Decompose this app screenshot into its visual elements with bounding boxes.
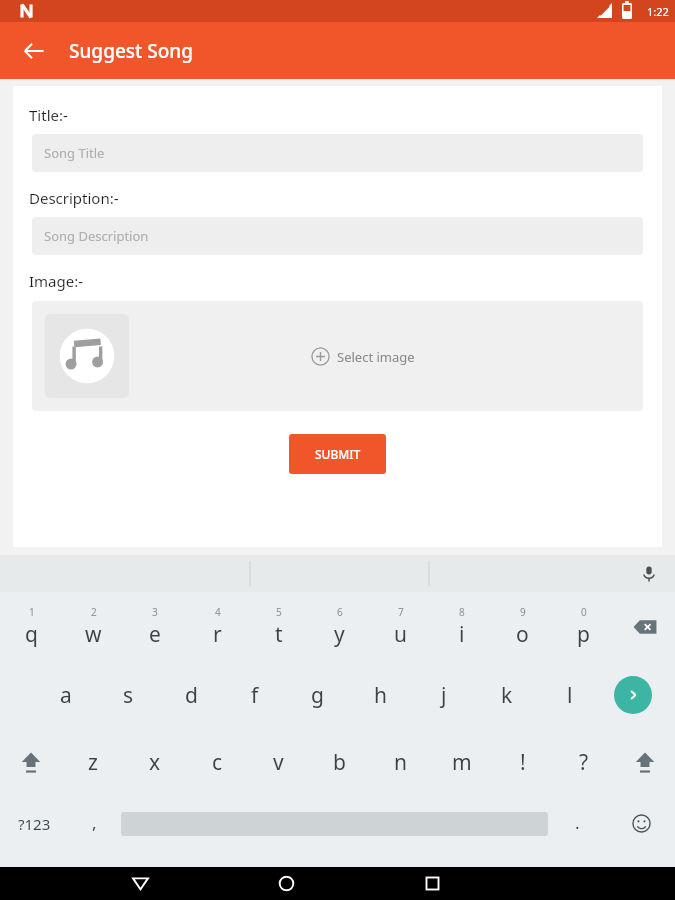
button[interactable]: h bbox=[349, 662, 412, 728]
button[interactable]: Home bbox=[262, 867, 310, 900]
staticText: s bbox=[123, 681, 134, 710]
staticText: g bbox=[311, 681, 324, 710]
button[interactable]: 2 bbox=[62, 592, 124, 662]
button[interactable]: 6 bbox=[309, 592, 370, 662]
staticText: 8 bbox=[459, 605, 465, 619]
button[interactable]: Backspace bbox=[614, 592, 675, 662]
staticText: Title:- bbox=[29, 105, 68, 125]
button[interactable]: g bbox=[286, 662, 349, 728]
button[interactable]: n bbox=[370, 728, 431, 796]
button[interactable]: SUBMIT bbox=[289, 434, 386, 474]
staticText: 4 bbox=[215, 605, 221, 619]
staticText: l bbox=[567, 681, 573, 710]
button[interactable]: 7 bbox=[370, 592, 431, 662]
button[interactable]: Shift bbox=[0, 728, 62, 796]
button[interactable]: 0 bbox=[553, 592, 614, 662]
staticText: 6 bbox=[337, 605, 343, 619]
button[interactable]: l bbox=[538, 662, 601, 728]
button[interactable]: 9 bbox=[492, 592, 553, 662]
button[interactable]: Voice input bbox=[633, 558, 665, 590]
staticText: f bbox=[251, 681, 259, 710]
staticText: ?123 bbox=[18, 814, 51, 834]
button[interactable]: Shift bbox=[614, 728, 675, 796]
staticText: j bbox=[441, 681, 447, 710]
staticText: Song Title bbox=[44, 144, 105, 162]
staticText: i bbox=[459, 620, 465, 649]
button[interactable]: Back bbox=[116, 867, 164, 900]
staticText: y bbox=[334, 620, 345, 649]
button[interactable]: Enter bbox=[601, 662, 664, 728]
button[interactable]: Space bbox=[121, 796, 548, 851]
staticText: u bbox=[394, 620, 407, 649]
staticText: c bbox=[212, 748, 223, 777]
staticText: v bbox=[273, 748, 284, 777]
button[interactable]: x bbox=[124, 728, 186, 796]
button[interactable]: Back bbox=[12, 29, 56, 73]
button[interactable]: . bbox=[548, 796, 607, 851]
staticText: 1:22 bbox=[647, 4, 669, 19]
button[interactable]: Emoji bbox=[607, 796, 675, 851]
staticText: 5 bbox=[276, 605, 282, 619]
button[interactable]: c bbox=[186, 728, 248, 796]
staticText: n bbox=[394, 748, 407, 777]
button[interactable]: f bbox=[223, 662, 286, 728]
button[interactable]: z bbox=[62, 728, 124, 796]
staticText: m bbox=[452, 748, 472, 777]
button[interactable]: v bbox=[248, 728, 309, 796]
staticText: 1 bbox=[29, 605, 35, 619]
staticText: d bbox=[185, 681, 198, 710]
button[interactable]: 5 bbox=[248, 592, 309, 662]
button[interactable]: k bbox=[475, 662, 538, 728]
button[interactable]: Recent apps bbox=[408, 867, 456, 900]
button[interactable]: b bbox=[309, 728, 370, 796]
staticText: x bbox=[149, 748, 161, 777]
staticText: t bbox=[275, 620, 283, 649]
staticText: w bbox=[85, 620, 102, 649]
staticText: ! bbox=[520, 748, 526, 777]
staticText: b bbox=[333, 748, 346, 777]
staticText: a bbox=[60, 681, 72, 710]
staticText: . bbox=[575, 811, 580, 834]
staticText: Description:- bbox=[29, 188, 119, 208]
staticText: 9 bbox=[520, 605, 526, 619]
staticText: e bbox=[149, 620, 161, 649]
button[interactable]: 1 bbox=[0, 592, 62, 662]
staticText: Suggest Song bbox=[69, 38, 194, 64]
button[interactable]: 8 bbox=[431, 592, 492, 662]
staticText: o bbox=[516, 620, 529, 649]
button[interactable]: , bbox=[68, 796, 121, 851]
staticText: , bbox=[92, 811, 97, 834]
staticText: SUBMIT bbox=[315, 446, 361, 462]
button[interactable]: s bbox=[97, 662, 160, 728]
button[interactable]: ? bbox=[553, 728, 614, 796]
staticText: h bbox=[374, 681, 387, 710]
staticText: 3 bbox=[152, 605, 158, 619]
staticText: Song Description bbox=[44, 227, 149, 245]
button[interactable]: Select image bbox=[32, 301, 643, 411]
staticText: 2 bbox=[91, 605, 97, 619]
button[interactable]: 4 bbox=[186, 592, 248, 662]
staticText: k bbox=[501, 681, 513, 710]
button[interactable]: d bbox=[160, 662, 223, 728]
button[interactable]: a bbox=[34, 662, 97, 728]
staticText: p bbox=[577, 620, 590, 649]
staticText: Image:- bbox=[29, 271, 84, 291]
button[interactable]: m bbox=[431, 728, 492, 796]
staticText: 7 bbox=[398, 605, 404, 619]
staticText: r bbox=[213, 620, 222, 649]
staticText: ? bbox=[579, 748, 589, 777]
staticText: Select image bbox=[337, 348, 415, 366]
button[interactable]: Song Title bbox=[32, 134, 643, 172]
button[interactable]: 3 bbox=[124, 592, 186, 662]
staticText: q bbox=[25, 620, 38, 649]
staticText: 0 bbox=[581, 605, 587, 619]
button[interactable]: ! bbox=[492, 728, 553, 796]
button[interactable]: j bbox=[412, 662, 475, 728]
button[interactable]: ?123 bbox=[0, 796, 68, 851]
button[interactable]: Song Description bbox=[32, 217, 643, 255]
staticText: z bbox=[88, 748, 98, 777]
